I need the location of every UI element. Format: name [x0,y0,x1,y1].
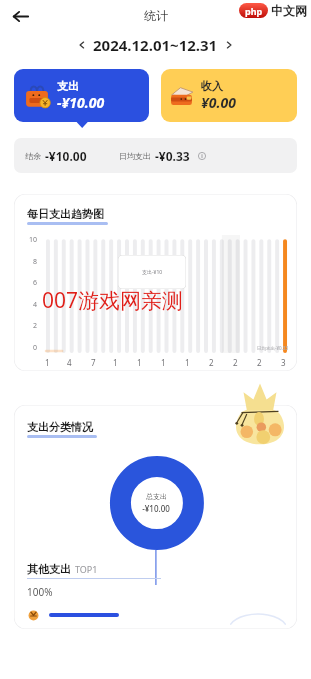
staticText: -¥10.00 [45,148,87,164]
staticText: 支出-¥10 [142,269,163,276]
staticText: 10 [113,357,121,368]
staticText: 13 [137,357,145,368]
staticText: 2024.12.01~12.31 [93,35,218,55]
staticText: 8 [33,257,38,267]
staticText: 4 [33,300,38,310]
staticText: 100% [27,585,53,599]
staticText: 日均支出-¥0.33 [257,345,288,351]
button[interactable]: Info [195,149,209,163]
staticText: 6 [33,278,38,288]
staticText: 22 [209,357,217,368]
button[interactable]: 支出分类情况 [14,405,297,629]
button[interactable]: Back [6,2,34,30]
staticText: 19 [185,357,193,368]
staticText: 0 [33,343,38,353]
staticText: 28 [257,357,265,368]
button[interactable]: 结余 [14,138,297,173]
staticText: 收入 [201,79,223,93]
staticText: 中文网 [271,3,307,18]
staticText: 支出分类情况 [27,420,93,434]
button[interactable]: Next period [220,36,238,54]
staticText: 007游戏网亲测 [42,286,184,315]
button[interactable]: 收入 [161,69,297,122]
staticText: 31 [281,357,289,368]
staticText: TOP1 [75,563,98,575]
staticText: php [245,5,263,17]
staticText: 总支出 [146,492,167,501]
staticText: 日均支出 [119,151,151,161]
staticText: -¥10.00 [57,93,105,112]
staticText: 10 [29,235,38,245]
staticText: 4 [67,357,72,368]
staticText: 其他支出 [27,562,71,576]
staticText: 25 [233,357,241,368]
button[interactable]: 支出 [14,69,149,128]
staticText: 结余 [25,151,41,161]
staticText: -¥10.00 [142,503,170,514]
staticText: 2 [33,321,38,331]
staticText: 每日支出趋势图 [27,207,104,221]
staticText: 7 [91,357,96,368]
staticText: ¥0.00 [201,93,236,112]
staticText: 支出 [57,79,79,93]
staticText: 1 [45,357,50,368]
staticText: -¥0.33 [155,148,190,164]
button[interactable]: 每日支出趋势图 [14,194,297,371]
staticText: 16 [161,357,169,368]
button[interactable]: Previous period [73,36,91,54]
staticText: 统计 [144,8,168,23]
